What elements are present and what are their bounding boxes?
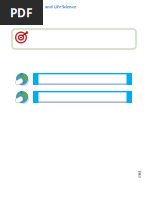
staticText: and Life Science bbox=[45, 4, 76, 9]
button[interactable]: Web link bbox=[33, 73, 132, 85]
button[interactable]: PDF document bbox=[0, 0, 43, 25]
staticText: PDF bbox=[10, 4, 33, 20]
button[interactable]: Web link bbox=[33, 91, 132, 103]
